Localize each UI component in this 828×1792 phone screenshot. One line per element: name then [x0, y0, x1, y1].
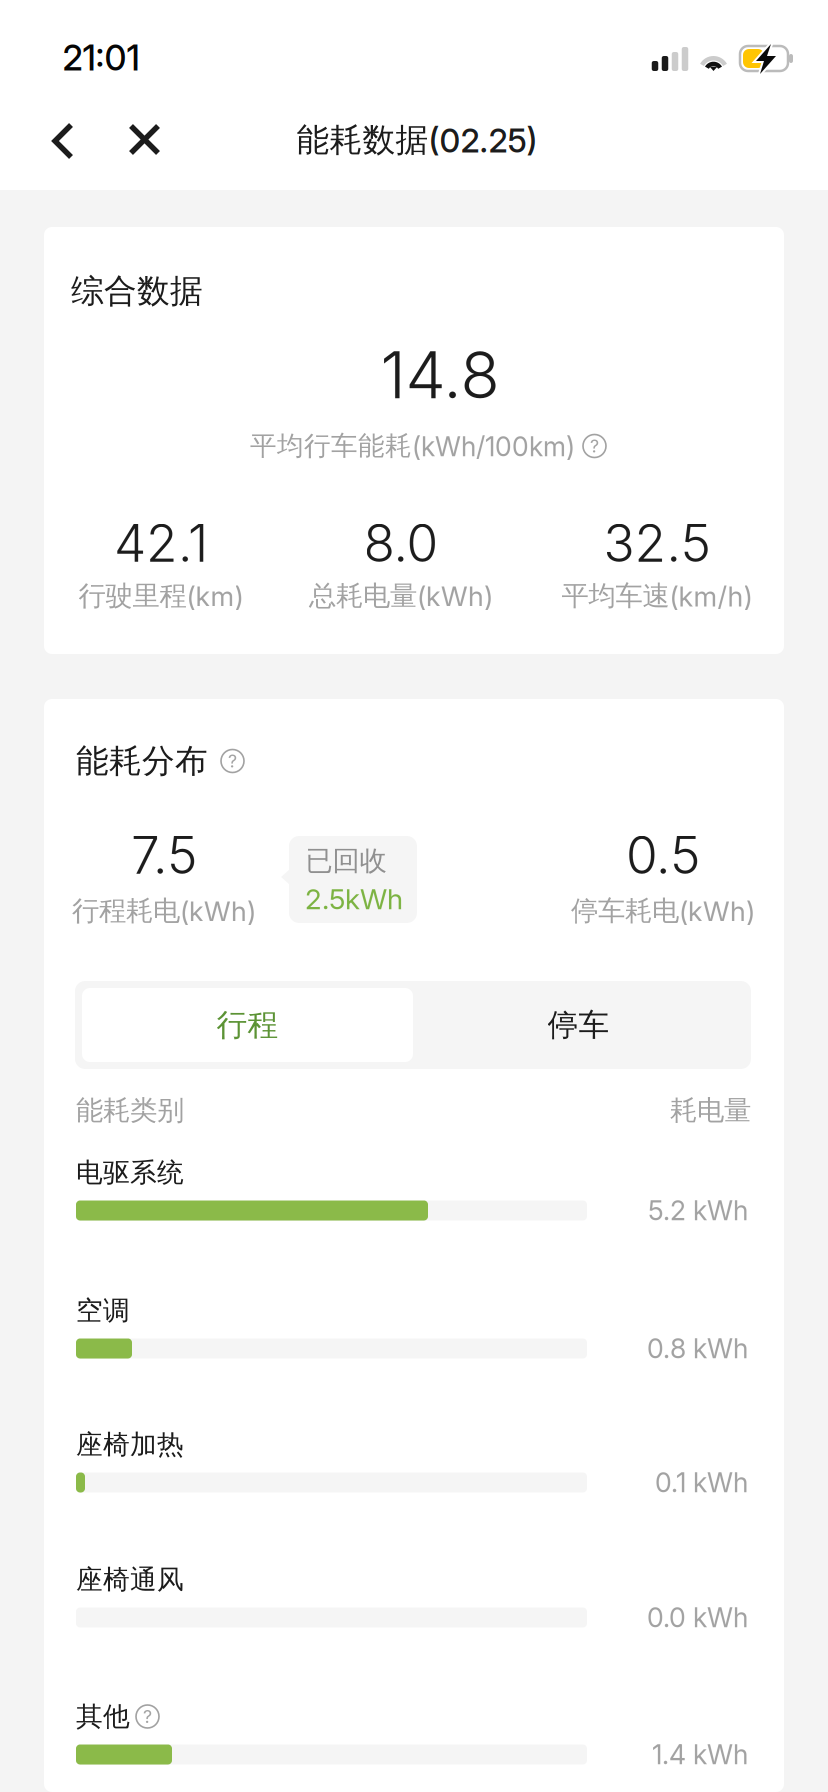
staticText: 32.5 [603, 512, 710, 574]
staticText: 能耗数据(02.25) [296, 119, 537, 161]
staticText: 1.4 kWh [652, 1738, 748, 1771]
staticText: 14.8 [380, 336, 499, 414]
staticText: 行程 [216, 1006, 278, 1044]
staticText: 其他 [76, 1700, 130, 1733]
staticText: 0.0 kWh [647, 1601, 748, 1634]
staticText: 平均车速(km/h) [561, 579, 752, 613]
staticText: 行程耗电(kWh) [72, 894, 256, 928]
staticText: 能耗类别 [76, 1093, 184, 1128]
staticText: 7.5 [131, 824, 197, 886]
staticText: 已回收 [305, 844, 386, 878]
staticText: 综合数据 [71, 270, 203, 312]
staticText: 空调 [76, 1294, 130, 1327]
staticText: 42.1 [114, 512, 208, 574]
staticText: 0.8 kWh [647, 1332, 748, 1365]
staticText: 平均行车能耗(kWh/100km) [250, 429, 575, 463]
staticText: 电驱系统 [76, 1156, 184, 1189]
staticText: ? [590, 435, 599, 457]
staticText: 座椅通风 [76, 1563, 184, 1596]
staticText: 耗电量 [670, 1093, 751, 1128]
staticText: 座椅加热 [76, 1428, 184, 1461]
staticText: 行驶里程(km) [78, 579, 243, 613]
staticText: ? [143, 1706, 152, 1727]
staticText: 0.1 kWh [655, 1466, 748, 1499]
staticText: 8.0 [363, 512, 438, 574]
staticText: 能耗分布 [76, 740, 208, 782]
staticText: 2.5kWh [305, 882, 403, 916]
staticText: 5.2 kWh [648, 1194, 748, 1227]
staticText: 停车耗电(kWh) [571, 894, 755, 928]
button[interactable]: 停车 [413, 988, 744, 1062]
staticText: ? [228, 750, 237, 772]
staticText: 总耗电量(kWh) [309, 579, 493, 613]
staticText: 0.5 [626, 824, 700, 886]
staticText: 停车 [547, 1006, 609, 1044]
staticText: 21:01 [62, 37, 139, 79]
button[interactable]: 行程 [82, 988, 413, 1062]
button[interactable]: Back [18, 96, 106, 186]
button[interactable]: Close [100, 95, 188, 185]
